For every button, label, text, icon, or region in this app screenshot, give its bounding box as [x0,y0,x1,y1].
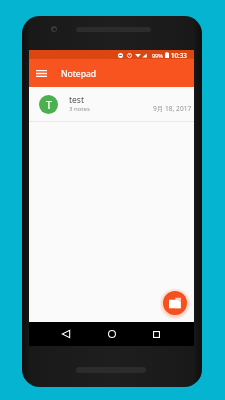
staticText: 99% [152,52,163,59]
button[interactable]: T [29,87,194,122]
button[interactable]: Open navigation drawer [31,63,51,83]
staticText: 3 notes [69,105,90,113]
staticText: test [69,94,85,106]
staticText: Notepad [61,68,97,80]
staticText: T [46,98,52,112]
button[interactable]: New note [163,291,187,315]
button[interactable]: Recent apps [147,325,165,343]
button[interactable]: Back [57,325,75,343]
staticText: 10:33 [171,51,187,59]
button[interactable]: Home [103,325,121,343]
staticText: 9月 18, 2017 [153,104,192,113]
